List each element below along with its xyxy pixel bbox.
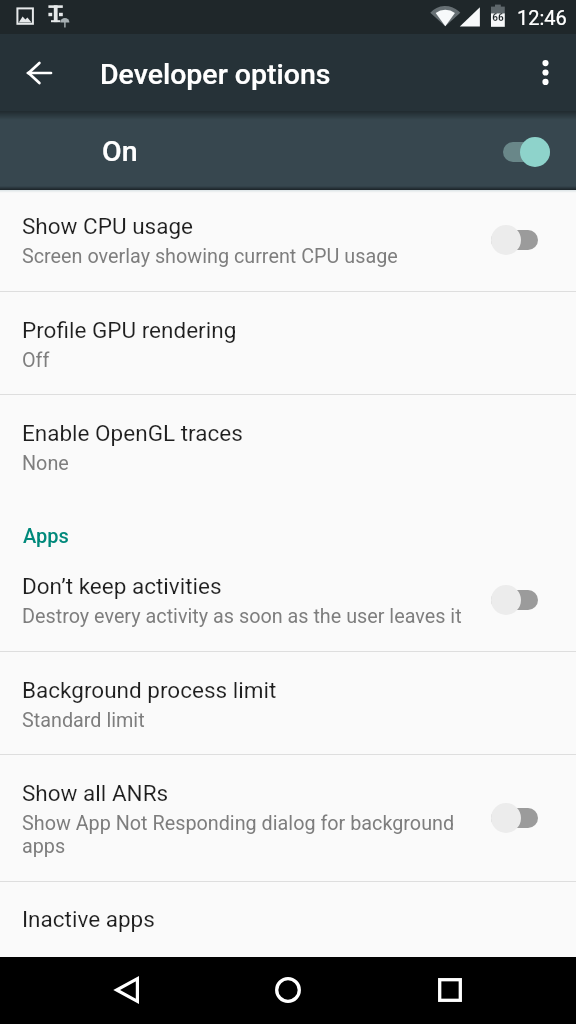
staticText: 66 bbox=[491, 12, 505, 24]
button[interactable]: Background process limit bbox=[0, 652, 576, 754]
staticText: Show App Not Responding dialog for backg… bbox=[22, 812, 455, 835]
staticText: None bbox=[22, 452, 69, 475]
button[interactable]: More options bbox=[523, 50, 567, 94]
staticText: Apps bbox=[23, 524, 69, 547]
staticText: Show CPU usage bbox=[22, 213, 194, 239]
staticText: Show all ANRs bbox=[22, 780, 169, 806]
button[interactable]: Show CPU usage bbox=[0, 190, 576, 291]
button[interactable]: Toggle Show CPU usage bbox=[491, 225, 538, 255]
staticText: Inactive apps bbox=[22, 906, 155, 932]
button[interactable]: Back bbox=[99, 962, 155, 1018]
button[interactable]: Inactive apps bbox=[0, 882, 576, 957]
staticText: Standard limit bbox=[22, 709, 145, 732]
button[interactable]: Don’t keep activities bbox=[0, 550, 576, 651]
button[interactable]: Toggle developer options bbox=[503, 137, 550, 167]
staticText: Developer options bbox=[100, 58, 331, 91]
button[interactable]: Toggle Don’t keep activities bbox=[491, 585, 538, 615]
staticText: Don’t keep activities bbox=[22, 573, 222, 599]
button[interactable]: Show all ANRs bbox=[0, 755, 576, 881]
staticText: On bbox=[102, 135, 138, 168]
button[interactable]: Apps bbox=[0, 497, 576, 550]
staticText: 12:46 bbox=[517, 6, 567, 29]
button[interactable]: Recent apps bbox=[422, 962, 478, 1018]
button[interactable]: Home bbox=[260, 962, 316, 1018]
staticText: apps bbox=[22, 835, 66, 858]
staticText: Enable OpenGL traces bbox=[22, 420, 243, 446]
button[interactable]: Navigate up bbox=[15, 49, 63, 97]
button[interactable]: Enable OpenGL traces bbox=[0, 395, 576, 497]
staticText: Background process limit bbox=[22, 677, 277, 703]
staticText: Profile GPU rendering bbox=[22, 317, 237, 343]
button[interactable]: Profile GPU rendering bbox=[0, 292, 576, 394]
button[interactable]: Toggle Show all ANRs bbox=[491, 803, 538, 833]
button[interactable]: On bbox=[0, 111, 576, 190]
staticText: Screen overlay showing current CPU usage bbox=[22, 245, 398, 268]
staticText: Off bbox=[22, 349, 50, 372]
staticText: Destroy every activity as soon as the us… bbox=[22, 605, 462, 628]
